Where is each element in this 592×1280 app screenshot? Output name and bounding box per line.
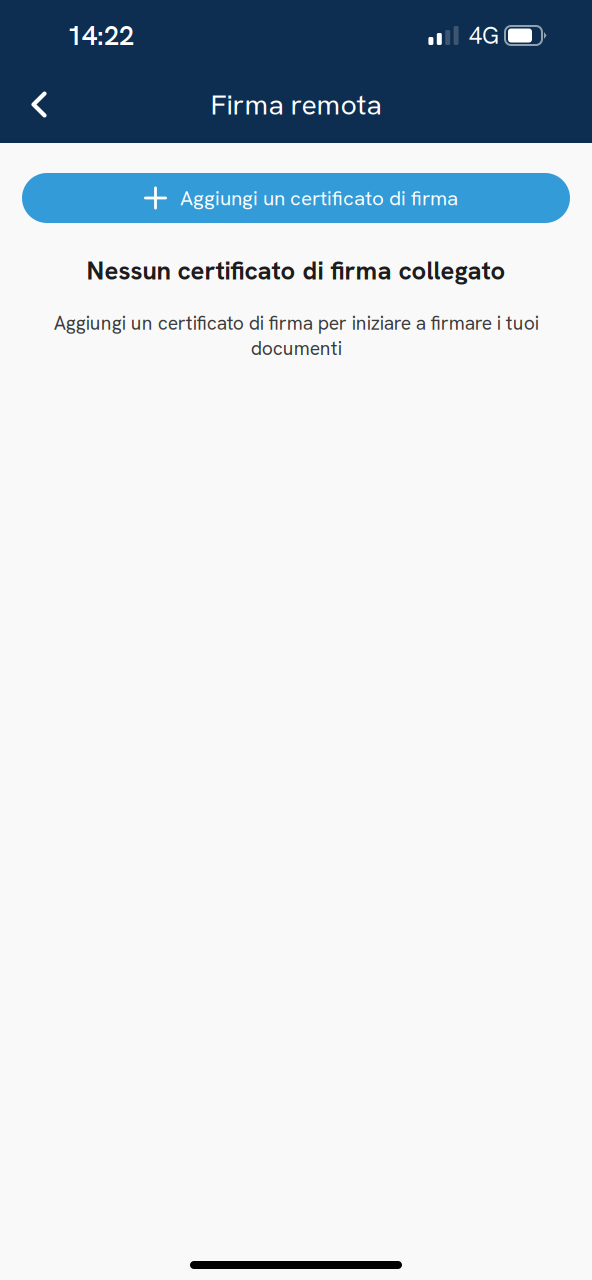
staticText: Aggiungi un certificato di firma per ini… [53, 310, 538, 361]
staticText: 14:22 [67, 18, 134, 53]
button[interactable]: Aggiungi un certificato di firma [22, 173, 570, 223]
staticText: 4G [469, 20, 499, 51]
staticText: Nessun certificato di firma collegato [86, 254, 505, 287]
button[interactable]: Indietro [10, 75, 68, 133]
staticText: Aggiungi un certificato di firma [180, 184, 458, 211]
staticText: Firma remota [210, 86, 381, 123]
